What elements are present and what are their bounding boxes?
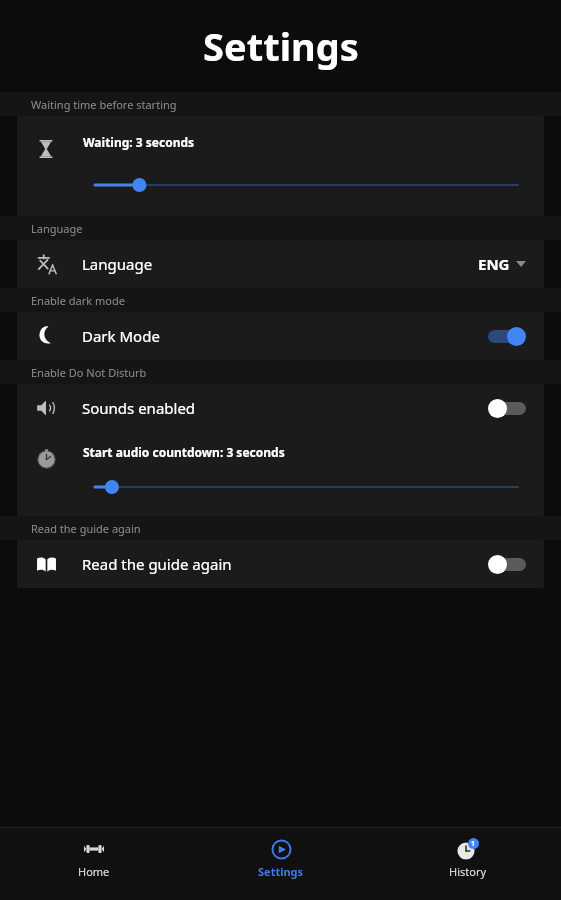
staticText: Waiting time before starting [31,97,177,112]
staticText: Start audio countdown: 3 seconds [83,444,285,460]
other: Toggle on [488,325,526,347]
button[interactable]: Sounds enabled [17,384,544,432]
button[interactable]: Slider [95,176,518,194]
staticText: Enable dark mode [31,293,125,308]
staticText: History [449,864,487,879]
staticText: ENG [478,254,510,274]
staticText: Language [82,254,153,274]
staticText: Settings [203,20,359,72]
button[interactable]: Home [0,828,187,900]
button[interactable]: Dark Mode [17,312,544,360]
staticText: Enable Do Not Disturb [31,365,147,380]
button[interactable]: Slider [95,478,518,496]
staticText: Waiting: 3 seconds [83,134,195,150]
button[interactable]: 1 [374,828,561,900]
button[interactable]: Read the guide again [17,540,544,588]
other: Toggle off [488,553,526,575]
button[interactable]: Settings [187,828,374,900]
staticText: Dark Mode [82,326,160,346]
staticText: Sounds enabled [82,398,196,418]
staticText: Home [78,864,110,879]
staticText: Read the guide again [31,521,141,536]
button[interactable]: Language [17,240,544,288]
staticText: Settings [258,864,304,879]
staticText: 1 [471,839,476,849]
staticText: Read the guide again [82,554,232,574]
staticText: Language [31,221,83,236]
other: Toggle off [488,397,526,419]
